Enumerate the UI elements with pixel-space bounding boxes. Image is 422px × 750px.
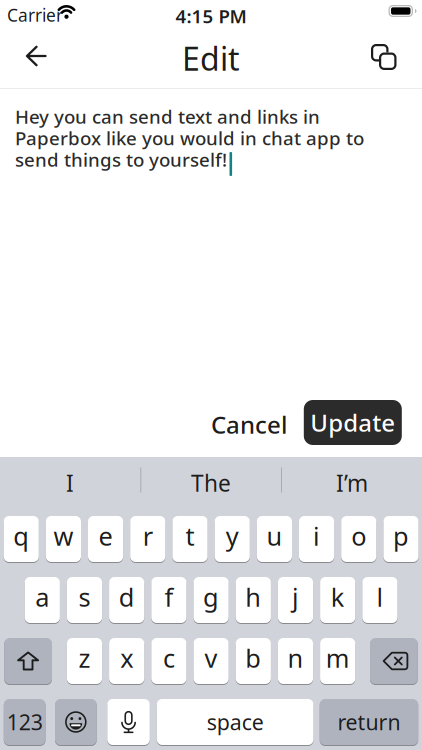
button[interactable]: f [151,577,186,624]
button[interactable]: p [383,516,419,563]
button[interactable]: y [215,516,250,563]
button[interactable]: u [257,516,292,563]
button[interactable]: l [362,577,397,624]
button[interactable]: a [25,577,60,624]
button[interactable]: Dictate [107,699,150,746]
button[interactable]: b [236,638,271,685]
staticText: space [207,708,264,736]
button[interactable]: The [141,460,281,506]
button[interactable]: o [341,516,376,563]
staticText: w [53,519,73,553]
button[interactable]: Copy [362,36,406,80]
button[interactable]: m [320,638,355,685]
staticText: t [185,519,194,553]
button[interactable]: space [157,699,313,746]
staticText: k [331,580,345,614]
staticText: y [226,519,239,553]
button[interactable]: e [88,516,123,563]
button[interactable]: r [130,516,165,563]
button[interactable]: v [193,638,229,685]
staticText: u [266,519,282,553]
staticText: x [120,641,133,675]
button[interactable]: Shift [4,638,52,685]
staticText: f [164,580,173,614]
button[interactable]: 123 [4,699,45,746]
staticText: c [163,641,175,675]
staticText: v [205,641,218,675]
staticText: Edit [182,37,240,79]
button[interactable]: n [278,638,313,685]
button[interactable]: q [4,516,39,563]
button[interactable]: g [193,577,229,624]
staticText: 123 [7,708,43,736]
button[interactable]: t [172,516,208,563]
button[interactable]: s [67,577,102,624]
button[interactable]: x [109,638,144,685]
staticText: return [337,708,400,736]
staticText: I [66,468,74,498]
staticText: Update [310,407,395,438]
staticText: q [13,519,29,553]
staticText: h [245,580,261,614]
button[interactable]: j [278,577,313,624]
staticText: Paperbox like you would in chat app to [15,125,364,150]
staticText: e [99,519,113,553]
staticText: s [78,580,90,614]
staticText: z [78,641,90,675]
staticText: g [203,580,219,614]
staticText: n [287,641,303,675]
button[interactable]: Back [14,36,58,76]
staticText: l [376,580,383,614]
staticText: j [292,580,299,614]
staticText: o [351,519,366,553]
staticText: Cancel [211,409,287,440]
button[interactable]: I [0,460,140,506]
button[interactable]: i [299,516,334,563]
staticText: b [245,641,261,675]
staticText: The [191,468,231,498]
button[interactable]: h [236,577,271,624]
button[interactable]: I’m [282,460,422,506]
staticText: p [393,519,409,553]
button[interactable]: return [320,699,418,746]
staticText: i [313,519,320,553]
button[interactable]: w [46,516,81,563]
staticText: m [326,641,350,675]
button[interactable]: Cancel [194,402,304,447]
button[interactable]: Update [304,400,402,445]
staticText: Hey you can send text and links in [15,104,320,129]
button[interactable]: Delete [370,638,418,685]
staticText: 4:15 PM [175,3,246,28]
button[interactable]: Emoji [55,699,97,746]
button[interactable]: k [320,577,355,624]
button[interactable]: d [109,577,144,624]
button[interactable]: c [151,638,186,685]
staticText: d [119,580,135,614]
staticText: a [35,580,49,614]
staticText: I’m [336,468,368,498]
staticText: r [143,519,153,553]
staticText: send things to yourself! [15,147,227,172]
staticText: Carrier [7,3,63,26]
button[interactable]: z [67,638,102,685]
